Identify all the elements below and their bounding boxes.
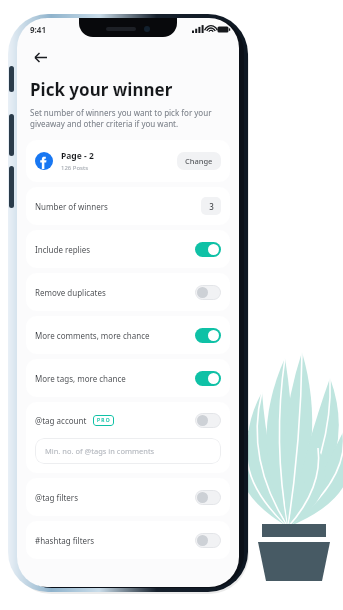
button[interactable]: Change (177, 152, 221, 170)
staticText: #hashtag filters (35, 535, 195, 546)
button[interactable]: On (195, 328, 221, 343)
button[interactable]: On (195, 242, 221, 257)
button[interactable]: Page - 2 (35, 140, 221, 182)
button[interactable]: Off (195, 285, 221, 300)
staticText: Min. no. of @tags in comments (45, 446, 155, 456)
staticText: @tag filters (35, 492, 195, 503)
button[interactable]: Off (195, 413, 221, 428)
button[interactable]: @tag filters (35, 478, 221, 516)
staticText: More comments, more chance (35, 330, 195, 341)
button[interactable]: #hashtag filters (35, 521, 221, 559)
button[interactable]: On (195, 371, 221, 386)
staticText: Number of winners (35, 201, 201, 212)
staticText: 126 Posts (61, 164, 89, 172)
staticText: Page - 2 (61, 150, 94, 162)
staticText: @tag account (35, 415, 87, 426)
button[interactable]: Off (195, 533, 221, 548)
button[interactable]: Include replies (35, 230, 221, 268)
button[interactable]: More tags, more chance (35, 359, 221, 397)
button[interactable]: Min. no. of @tags in comments (35, 438, 221, 464)
staticText: P R O (97, 417, 110, 424)
button[interactable]: Off (195, 490, 221, 505)
button[interactable]: Remove duplicates (35, 273, 221, 311)
button[interactable]: Number of winners (35, 187, 221, 225)
staticText: Include replies (35, 244, 195, 255)
button[interactable]: Back (27, 44, 53, 70)
staticText: 3 (209, 201, 214, 212)
staticText: Pick your winner (30, 78, 173, 101)
staticText: Change (185, 156, 213, 166)
staticText: Set number of winners you want to pick f… (30, 107, 212, 130)
button[interactable]: @tag account (35, 402, 221, 438)
button[interactable]: More comments, more chance (35, 316, 221, 354)
staticText: Remove duplicates (35, 287, 195, 298)
staticText: More tags, more chance (35, 373, 195, 384)
staticText: 9:41 (30, 24, 46, 35)
